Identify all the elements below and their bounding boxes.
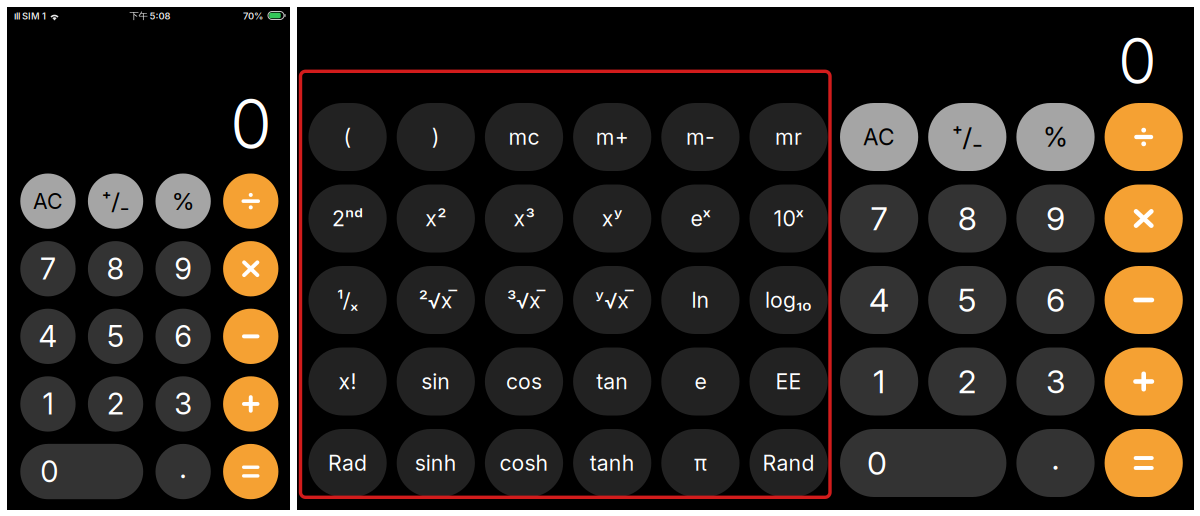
button[interactable]: 9	[155, 241, 211, 296]
button[interactable]: 3	[155, 376, 211, 432]
staticText: AC	[863, 123, 895, 151]
staticText: ıll SIM 1	[14, 10, 46, 22]
staticText: sinh	[415, 450, 457, 476]
staticText: 8	[106, 251, 124, 286]
staticText: 6	[174, 319, 192, 354]
button[interactable]: sin	[397, 347, 475, 415]
staticText: %	[1043, 121, 1068, 153]
staticText: π	[694, 450, 707, 476]
button[interactable]: Rand	[749, 429, 828, 497]
button[interactable]: 2ⁿᵈ	[308, 184, 387, 252]
staticText: cos	[506, 369, 542, 394]
button[interactable]: cosh	[485, 429, 563, 497]
button[interactable]: 4	[20, 309, 76, 364]
button[interactable]: 7	[840, 184, 918, 252]
button[interactable]: xʸ	[573, 184, 651, 252]
button[interactable]: 8	[88, 241, 143, 296]
button[interactable]: Divide	[1105, 103, 1183, 171]
button[interactable]: log₁₀	[749, 266, 828, 334]
button[interactable]: 2	[928, 347, 1006, 415]
button[interactable]: 7	[20, 241, 76, 296]
staticText: 0	[1118, 23, 1157, 99]
button[interactable]: Rad	[308, 429, 387, 497]
staticText: 下午 5:08	[129, 10, 170, 22]
button[interactable]: ²√x̅	[397, 266, 475, 334]
button[interactable]: ³√x̅	[485, 266, 563, 334]
button[interactable]: AC	[840, 103, 918, 171]
button[interactable]: 1	[840, 347, 918, 415]
button[interactable]: ¹∕ₓ	[308, 266, 387, 334]
button[interactable]: )	[397, 103, 475, 171]
button[interactable]: AC	[20, 173, 76, 229]
staticText: AC	[33, 188, 63, 214]
button[interactable]: cos	[485, 347, 563, 415]
button[interactable]: 5	[928, 266, 1006, 334]
button[interactable]: ʸ√x̅	[573, 266, 651, 334]
button[interactable]: Subtract	[223, 309, 278, 364]
button[interactable]: 4	[840, 266, 918, 334]
button[interactable]: .	[1016, 429, 1095, 497]
button[interactable]: 1	[20, 376, 76, 432]
staticText: mr	[775, 124, 802, 150]
button[interactable]: Equals	[1105, 429, 1183, 497]
button[interactable]: x²	[397, 184, 475, 252]
button[interactable]: Multiply	[1105, 184, 1183, 252]
staticText: 3	[174, 386, 192, 422]
staticText: ¹∕ₓ	[337, 287, 358, 313]
button[interactable]: m+	[573, 103, 651, 171]
button[interactable]: e	[661, 347, 739, 415]
button[interactable]: ⁺∕₋	[928, 103, 1006, 171]
button[interactable]: eˣ	[661, 184, 739, 252]
button[interactable]: Divide	[223, 173, 278, 229]
button[interactable]: ln	[661, 266, 739, 334]
button[interactable]: m-	[661, 103, 739, 171]
button[interactable]: EE	[749, 347, 828, 415]
staticText: m+	[596, 124, 629, 150]
button[interactable]: π	[661, 429, 739, 497]
button[interactable]: 0	[840, 429, 1006, 497]
button[interactable]: 5	[88, 309, 143, 364]
button[interactable]: %	[155, 173, 211, 229]
button[interactable]: 6	[1016, 266, 1095, 334]
button[interactable]: 2	[88, 376, 143, 432]
button[interactable]: 9	[1016, 184, 1095, 252]
staticText: 7	[40, 251, 56, 286]
staticText: 9	[174, 251, 192, 286]
staticText: eˣ	[690, 206, 710, 231]
staticText: ²√x̅	[419, 285, 453, 315]
button[interactable]: tanh	[573, 429, 651, 497]
staticText: )	[432, 124, 440, 150]
button[interactable]: mc	[485, 103, 563, 171]
button[interactable]: mr	[749, 103, 828, 171]
button[interactable]: 10ˣ	[749, 184, 828, 252]
button[interactable]: 3	[1016, 347, 1095, 415]
button[interactable]: Subtract	[1105, 266, 1183, 334]
button[interactable]: (	[308, 103, 387, 171]
button[interactable]: Equals	[223, 444, 278, 499]
staticText: 2	[107, 386, 124, 422]
staticText: 7	[871, 199, 888, 238]
staticText: 4	[869, 281, 889, 319]
button[interactable]: Multiply	[223, 241, 278, 296]
button[interactable]: .	[155, 444, 211, 499]
staticText: 0	[230, 83, 272, 165]
button[interactable]: x³	[485, 184, 563, 252]
button[interactable]: 6	[155, 309, 211, 364]
staticText: .	[1051, 439, 1059, 477]
button[interactable]: x!	[308, 347, 387, 415]
button[interactable]: sinh	[397, 429, 475, 497]
button[interactable]: 8	[928, 184, 1006, 252]
button[interactable]: Add	[223, 376, 278, 432]
staticText: m-	[686, 124, 715, 150]
button[interactable]: %	[1016, 103, 1095, 171]
staticText: x²	[425, 206, 446, 231]
button[interactable]: ⁺∕₋	[88, 173, 143, 229]
staticText: 1	[873, 362, 885, 401]
button[interactable]: tan	[573, 347, 651, 415]
button[interactable]: Add	[1105, 347, 1183, 415]
staticText: ⁺∕₋	[101, 187, 129, 216]
staticText: 5	[107, 319, 124, 354]
staticText: tanh	[590, 450, 635, 476]
staticText: 9	[1046, 199, 1065, 238]
button[interactable]: 0	[20, 444, 143, 499]
